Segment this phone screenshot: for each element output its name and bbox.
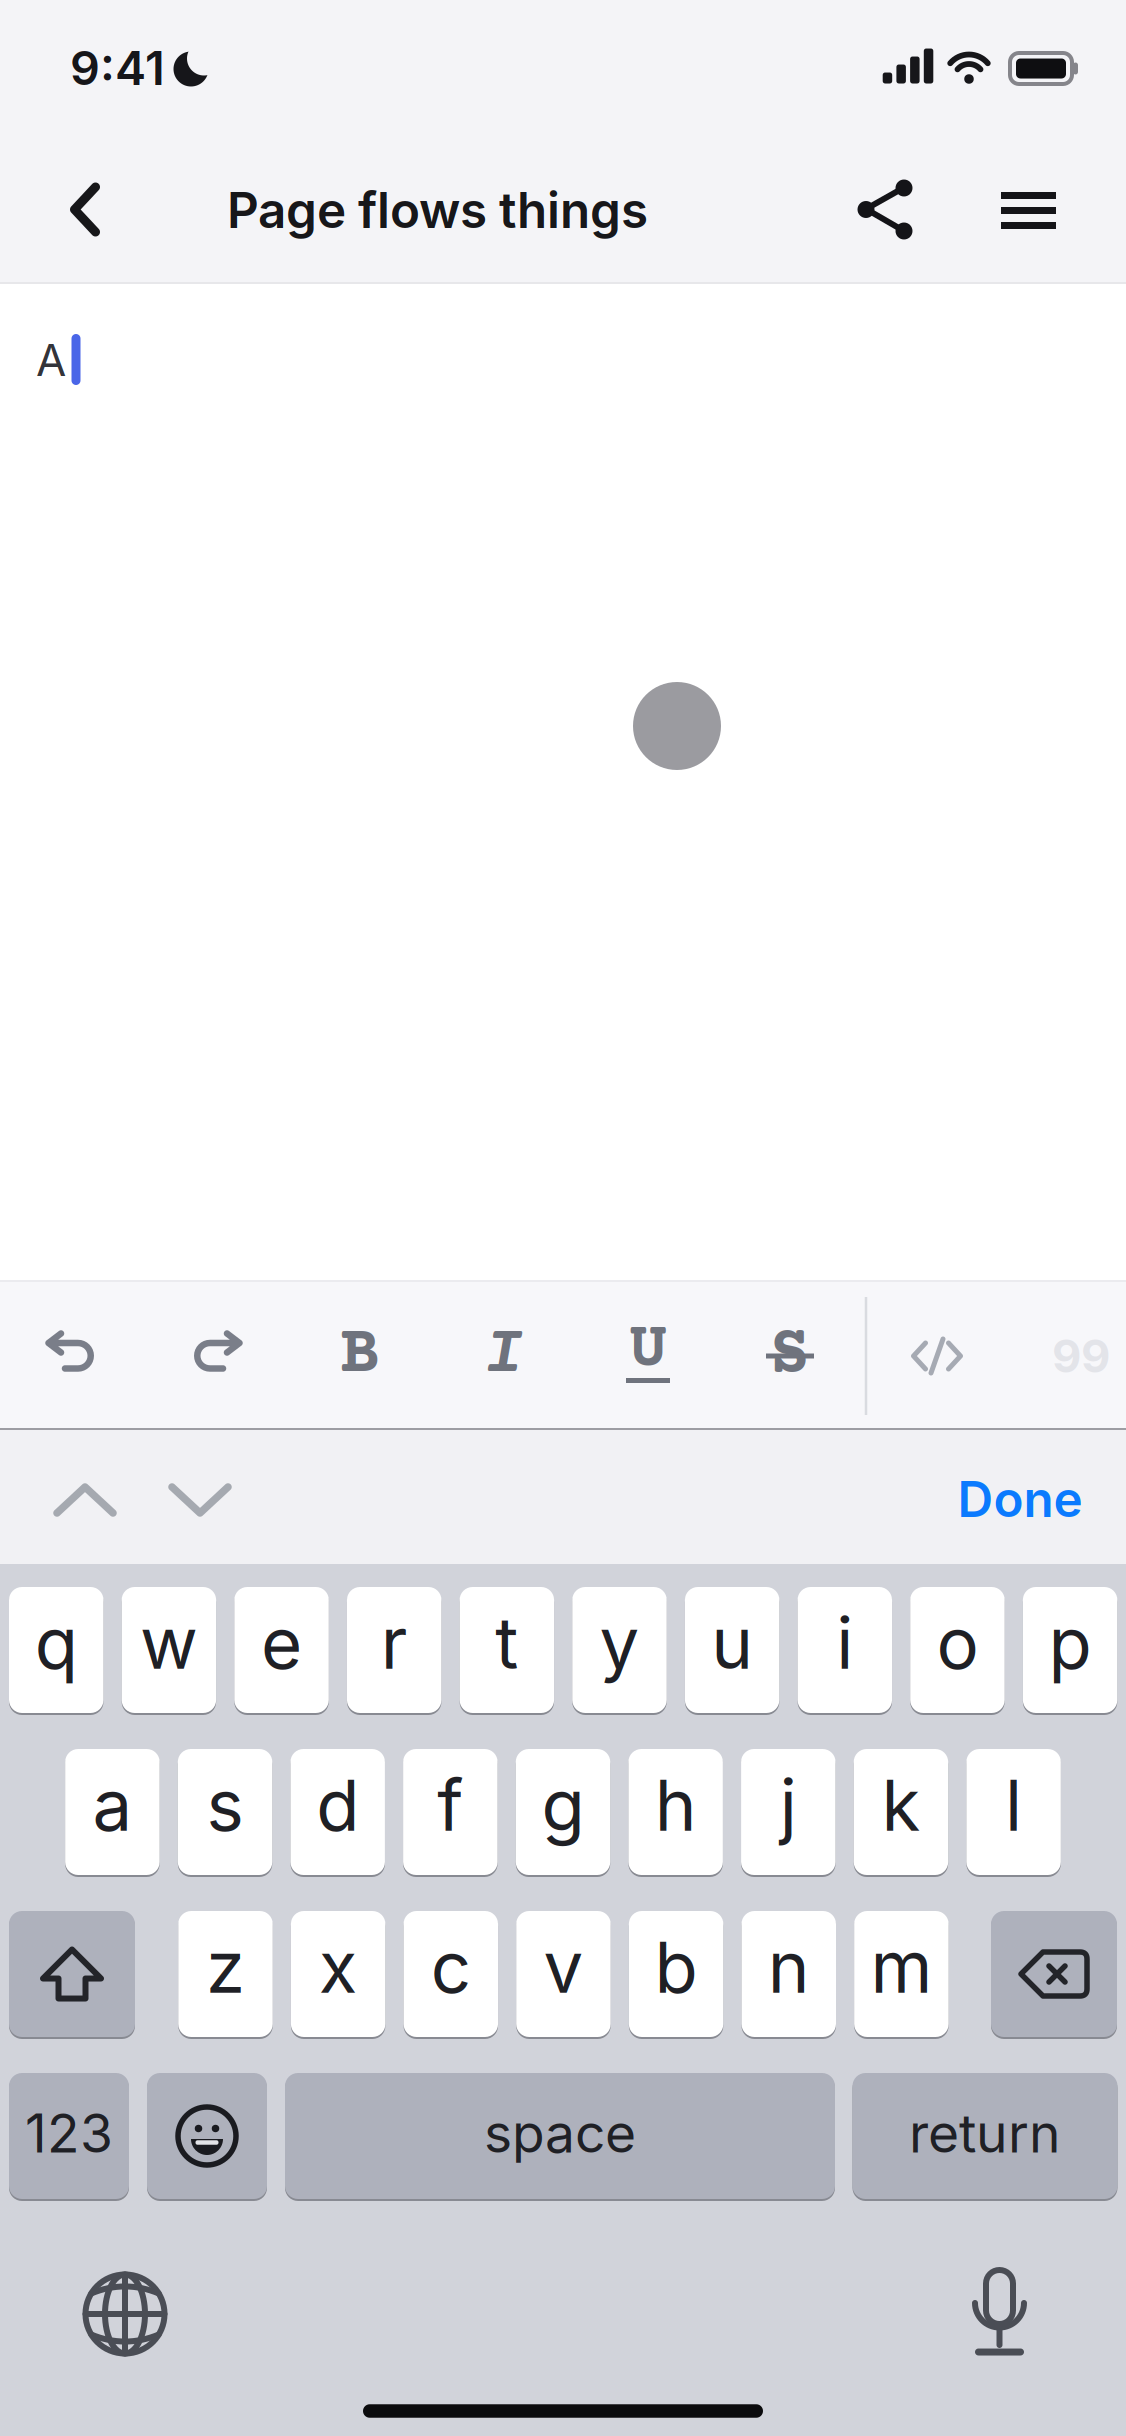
button[interactable]: Dictate xyxy=(975,2267,1024,2357)
button[interactable]: Done xyxy=(957,1469,1082,1529)
staticText: S xyxy=(769,1318,810,1394)
staticText: U xyxy=(629,1315,667,1387)
button[interactable]: Strikethrough xyxy=(765,1329,815,1383)
button[interactable]: Emoji xyxy=(147,2072,267,2200)
button[interactable]: o xyxy=(910,1586,1005,1714)
staticText: z xyxy=(206,1924,245,2010)
staticText: j xyxy=(780,1762,797,1848)
button[interactable]: n xyxy=(741,1910,836,2038)
staticText: x xyxy=(319,1924,358,2010)
staticText: u xyxy=(711,1600,753,1686)
button[interactable]: Quote xyxy=(1052,1329,1110,1383)
button[interactable]: v xyxy=(516,1910,611,2038)
button[interactable]: s xyxy=(178,1748,272,1876)
button[interactable]: f xyxy=(403,1748,498,1876)
button[interactable]: Shift xyxy=(9,1910,135,2038)
button[interactable]: space xyxy=(285,2072,835,2200)
button[interactable]: m xyxy=(854,1910,949,2038)
staticText: Page flows things xyxy=(227,180,648,240)
button[interactable]: Italic xyxy=(483,1318,524,1394)
staticText: s xyxy=(207,1762,244,1848)
button[interactable]: i xyxy=(798,1586,892,1714)
button[interactable]: Delete xyxy=(991,1910,1117,2038)
staticText: k xyxy=(881,1762,920,1848)
button[interactable]: w xyxy=(122,1586,216,1714)
staticText: B xyxy=(339,1318,380,1394)
staticText: d xyxy=(316,1762,359,1848)
button[interactable]: t xyxy=(460,1586,554,1714)
staticText: f xyxy=(437,1762,463,1848)
staticText: return xyxy=(909,2101,1061,2165)
button[interactable]: a xyxy=(65,1748,160,1876)
button[interactable]: Bold xyxy=(339,1318,380,1394)
staticText: g xyxy=(541,1762,584,1848)
staticText: l xyxy=(1005,1762,1022,1848)
button[interactable]: x xyxy=(291,1910,385,2038)
button[interactable]: 123 xyxy=(9,2072,129,2200)
button[interactable]: p xyxy=(1023,1586,1117,1714)
button[interactable]: Next field xyxy=(172,1487,228,1513)
button[interactable]: Share xyxy=(858,179,912,239)
staticText: v xyxy=(543,1924,583,2010)
staticText: 123 xyxy=(25,2101,113,2165)
button[interactable]: g xyxy=(516,1748,610,1876)
staticText: A xyxy=(36,333,66,387)
button[interactable]: h xyxy=(628,1748,723,1876)
button[interactable]: q xyxy=(9,1586,103,1714)
button[interactable]: k xyxy=(854,1748,948,1876)
staticText: 99 xyxy=(1052,1329,1110,1383)
button[interactable]: d xyxy=(290,1748,385,1876)
staticText: space xyxy=(484,2101,636,2165)
button[interactable]: l xyxy=(966,1748,1061,1876)
staticText: 9:41 xyxy=(70,40,165,96)
staticText: p xyxy=(1049,1600,1092,1686)
button[interactable]: c xyxy=(404,1910,498,2038)
staticText: a xyxy=(92,1762,132,1848)
staticText: r xyxy=(381,1600,408,1686)
button[interactable]: Redo xyxy=(191,1332,241,1380)
button[interactable]: e xyxy=(234,1586,329,1714)
staticText: y xyxy=(599,1600,639,1686)
staticText: b xyxy=(655,1924,698,2010)
staticText: i xyxy=(836,1600,853,1686)
button[interactable]: Undo xyxy=(47,1332,97,1380)
button[interactable]: b xyxy=(629,1910,723,2038)
staticText: m xyxy=(870,1924,932,2010)
staticText: e xyxy=(261,1600,302,1686)
button[interactable]: Next keyboard xyxy=(84,2273,166,2355)
staticText: Done xyxy=(957,1469,1082,1529)
staticText: n xyxy=(768,1924,810,2010)
button[interactable]: Underline xyxy=(623,1331,673,1385)
button[interactable]: r xyxy=(347,1586,441,1714)
button[interactable]: u xyxy=(685,1586,779,1714)
button[interactable]: Menu xyxy=(1001,192,1056,229)
staticText: o xyxy=(936,1600,978,1686)
button[interactable]: j xyxy=(741,1748,836,1876)
staticText: I xyxy=(483,1318,524,1394)
button[interactable]: Code xyxy=(907,1334,967,1378)
staticText: t xyxy=(495,1600,518,1686)
button[interactable]: z xyxy=(178,1910,273,2038)
staticText: h xyxy=(655,1762,697,1848)
staticText: w xyxy=(140,1600,198,1686)
button[interactable]: return xyxy=(852,2072,1117,2200)
staticText: c xyxy=(431,1924,471,2010)
button[interactable]: Back xyxy=(70,183,100,236)
staticText: q xyxy=(35,1600,78,1686)
button[interactable]: Previous field xyxy=(57,1487,113,1513)
button[interactable]: y xyxy=(572,1586,667,1714)
